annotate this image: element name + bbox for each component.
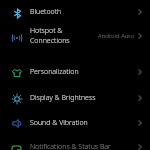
staticText: Android Auto: [98, 32, 134, 40]
button[interactable]: Sound & Vibration: [0, 110, 150, 135]
button[interactable]: Personalization: [0, 60, 150, 84]
staticText: Hotspot &: [30, 26, 63, 36]
staticText: Sound & Vibration: [30, 118, 88, 128]
button[interactable]: Hotspot &: [0, 22, 150, 49]
button[interactable]: Notifications & Status Bar: [0, 135, 150, 150]
staticText: Personalization: [30, 67, 79, 77]
button[interactable]: Display & Brightness: [0, 85, 150, 110]
staticText: Connections: [30, 36, 70, 46]
button[interactable]: Bluetooth: [0, 0, 150, 23]
staticText: Bluetooth: [30, 7, 62, 17]
staticText: Notifications & Status Bar: [30, 142, 111, 150]
staticText: Display & Brightness: [30, 93, 96, 103]
